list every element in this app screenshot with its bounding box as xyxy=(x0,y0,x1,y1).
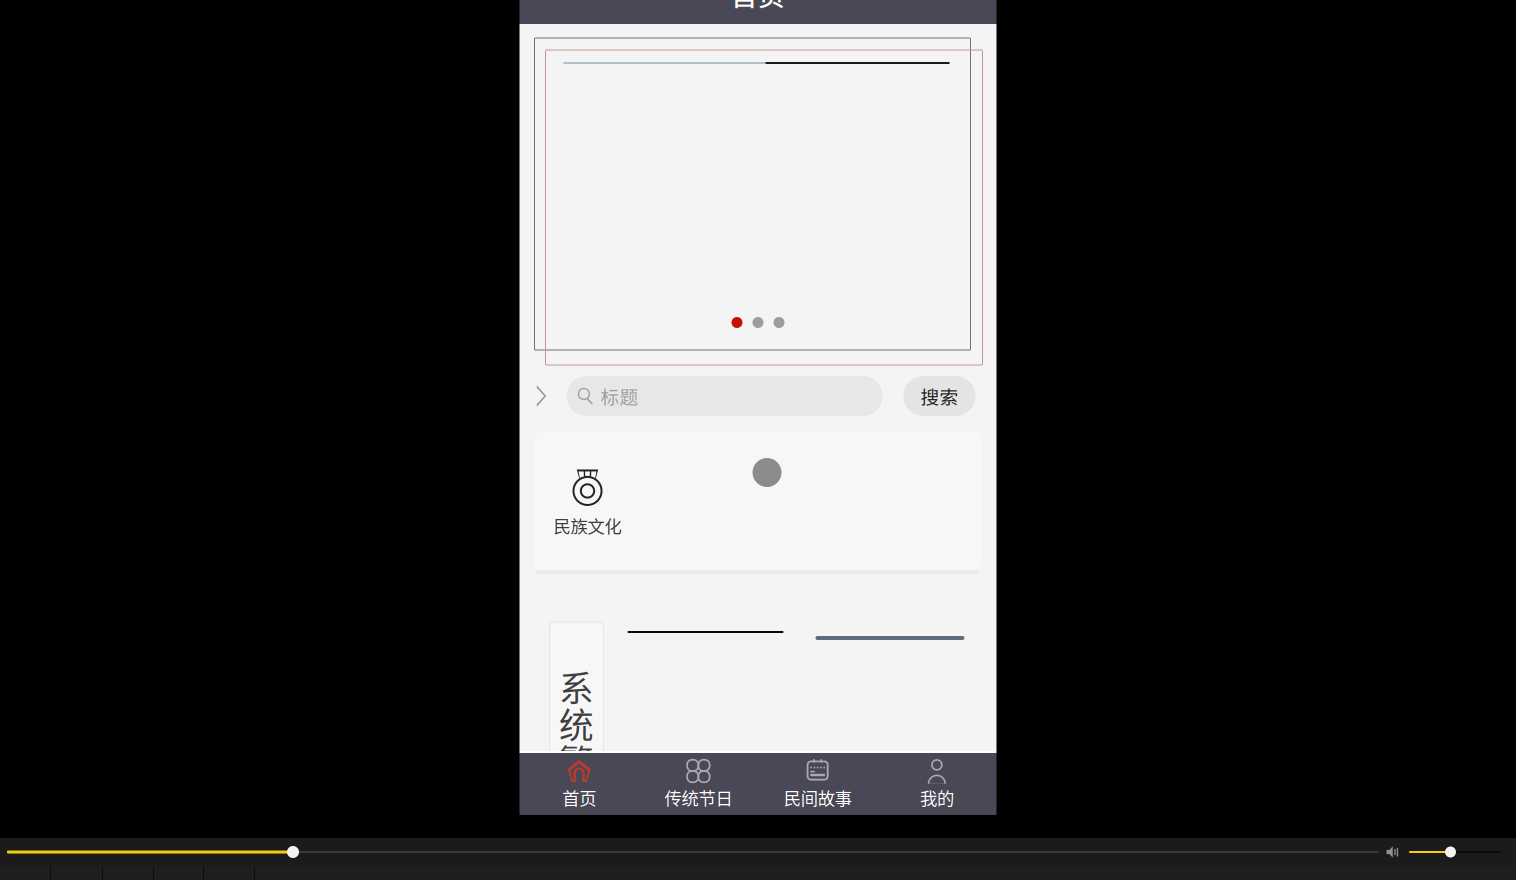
button[interactable]: 标题 xyxy=(566,376,882,416)
button[interactable]: 传统节日 xyxy=(639,753,758,815)
button[interactable]: 民间故事 xyxy=(758,753,877,815)
button[interactable]: 首页 xyxy=(519,753,639,815)
staticText: 首页 xyxy=(731,0,785,13)
staticText: 系 xyxy=(559,661,594,712)
button[interactable]: 民族文化 xyxy=(534,432,981,570)
button[interactable]: 展开 xyxy=(534,376,548,416)
staticText: 民间故事 xyxy=(784,785,852,810)
button[interactable]: 我的 xyxy=(877,753,996,815)
staticText: 传统节日 xyxy=(664,785,732,810)
button[interactable]: 搜索 xyxy=(903,376,975,416)
staticText: 搜索 xyxy=(920,382,958,409)
staticText: 繁 xyxy=(559,735,594,786)
staticText: 我的 xyxy=(920,785,954,810)
staticText: 首页 xyxy=(562,785,596,810)
button[interactable]: 系 xyxy=(519,574,996,754)
staticText: 统 xyxy=(559,698,594,749)
staticText: 民族文化 xyxy=(553,513,621,538)
staticText: 标题 xyxy=(600,382,638,409)
